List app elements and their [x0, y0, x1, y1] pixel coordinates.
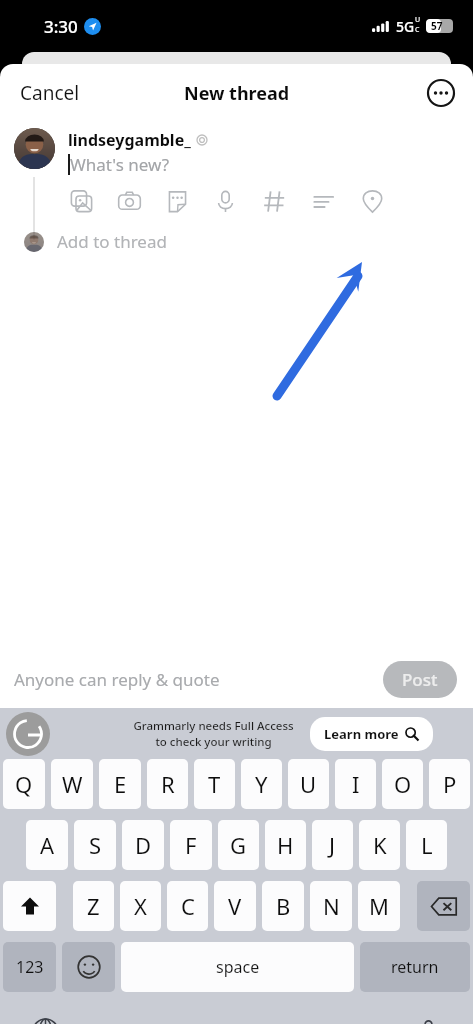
staticText: return: [391, 956, 439, 978]
button[interactable]: Learn more: [310, 717, 433, 751]
button[interactable]: Y: [241, 759, 282, 809]
staticText: Q: [15, 769, 33, 799]
button[interactable]: Backspace: [417, 881, 470, 931]
staticText: M: [369, 891, 389, 921]
staticText: R: [161, 769, 175, 799]
staticText: C: [415, 25, 420, 35]
staticText: J: [329, 830, 336, 860]
button[interactable]: Change keyboard language: [28, 1014, 62, 1024]
button[interactable]: S: [74, 820, 116, 870]
button[interactable]: Grammarly: [6, 712, 50, 756]
button[interactable]: P: [429, 759, 470, 809]
staticText: Learn more: [324, 725, 399, 743]
button[interactable]: Add location: [359, 188, 385, 214]
staticText: 5G: [396, 17, 415, 36]
staticText: Add to thread: [57, 230, 167, 253]
staticText: Post: [402, 668, 438, 691]
staticText: Grammarly needs Full Access: [133, 718, 294, 734]
button[interactable]: Add to thread: [0, 226, 473, 259]
button[interactable]: Anyone can reply & quote: [0, 660, 228, 699]
button[interactable]: U: [288, 759, 329, 809]
staticText: F: [185, 830, 197, 860]
staticText: X: [134, 891, 147, 921]
button[interactable]: Poll: [310, 188, 336, 214]
button[interactable]: X: [120, 881, 161, 931]
staticText: to check your writing: [155, 734, 272, 750]
staticText: 57: [431, 19, 443, 33]
button[interactable]: A: [26, 820, 68, 870]
button[interactable]: More options: [427, 79, 455, 107]
button[interactable]: R: [147, 759, 188, 809]
staticText: G: [230, 830, 247, 860]
button[interactable]: Camera: [116, 188, 142, 214]
staticText: New thread: [184, 81, 290, 106]
button[interactable]: return: [360, 942, 470, 992]
button[interactable]: O: [382, 759, 423, 809]
staticText: H: [277, 830, 294, 860]
button[interactable]: space: [121, 942, 354, 992]
staticText: What's new?: [70, 153, 170, 176]
button[interactable]: F: [170, 820, 212, 870]
staticText: 123: [16, 956, 44, 978]
staticText: W: [62, 769, 83, 799]
button[interactable]: Add photo: [68, 188, 94, 214]
button[interactable]: V: [214, 881, 256, 931]
staticText: U: [300, 769, 317, 799]
button[interactable]: Z: [73, 881, 114, 931]
staticText: O: [394, 769, 412, 799]
button[interactable]: K: [359, 820, 400, 870]
button[interactable]: C: [167, 881, 208, 931]
button[interactable]: M: [358, 881, 400, 931]
button[interactable]: Add GIF: [164, 188, 190, 214]
staticText: lindseygamble_: [68, 129, 191, 151]
button[interactable]: Dictation: [411, 1014, 445, 1024]
staticText: Z: [87, 891, 100, 921]
staticText: space: [216, 956, 260, 978]
staticText: K: [373, 830, 387, 860]
staticText: I: [352, 769, 360, 799]
staticText: C: [181, 891, 195, 921]
button[interactable]: J: [312, 820, 353, 870]
staticText: D: [135, 830, 152, 860]
button[interactable]: L: [406, 820, 447, 870]
button[interactable]: D: [122, 820, 164, 870]
button[interactable]: 123: [3, 942, 56, 992]
staticText: E: [114, 769, 127, 799]
staticText: A: [40, 830, 55, 860]
staticText: S: [89, 830, 102, 860]
button[interactable]: W: [51, 759, 93, 809]
button[interactable]: B: [262, 881, 304, 931]
button[interactable]: H: [265, 820, 306, 870]
button[interactable]: Voice: [212, 188, 238, 214]
button[interactable]: G: [218, 820, 259, 870]
staticText: P: [443, 769, 457, 799]
button[interactable]: Post: [383, 661, 457, 698]
staticText: B: [276, 891, 291, 921]
button[interactable]: Q: [3, 759, 45, 809]
button[interactable]: E: [99, 759, 141, 809]
button[interactable]: Emoji: [62, 942, 115, 992]
staticText: U: [415, 15, 421, 25]
staticText: V: [228, 891, 242, 921]
button[interactable]: Add tag: [261, 188, 287, 214]
staticText: L: [421, 830, 433, 860]
button[interactable]: I: [335, 759, 376, 809]
staticText: T: [208, 769, 221, 799]
staticText: Y: [255, 769, 268, 799]
button[interactable]: N: [310, 881, 352, 931]
button[interactable]: Cancel: [0, 72, 88, 114]
staticText: 3:30: [44, 15, 78, 38]
staticText: N: [323, 891, 340, 921]
button[interactable]: T: [194, 759, 235, 809]
button[interactable]: Shift: [3, 881, 56, 931]
